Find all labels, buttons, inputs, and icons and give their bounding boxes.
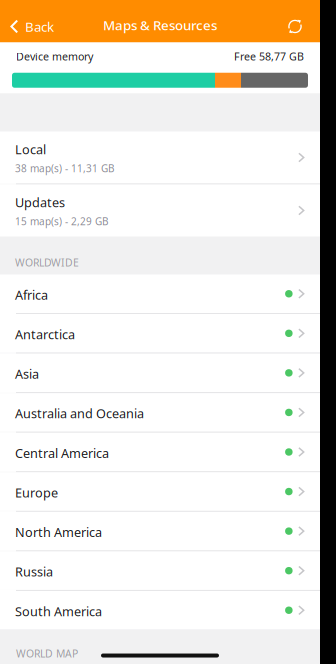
staticText: 15 map(s) - 2,29 GB — [15, 214, 109, 228]
staticText: North America — [15, 523, 102, 541]
staticText: Europe — [15, 484, 58, 501]
button[interactable]: Russia — [0, 551, 320, 590]
button[interactable]: North America — [0, 512, 320, 550]
staticText: 38 map(s) - 11,31 GB — [15, 161, 115, 175]
button[interactable]: Africa — [0, 274, 320, 313]
button[interactable]: South America — [0, 591, 320, 630]
staticText: Russia — [15, 563, 53, 580]
staticText: Device memory — [16, 49, 93, 64]
staticText: Africa — [15, 286, 48, 303]
staticText: Free 58,77 GB — [234, 49, 304, 64]
button[interactable]: Back — [0, 0, 66, 42]
staticText: Back — [25, 17, 54, 36]
staticText: Australia and Oceania — [15, 405, 144, 422]
staticText: Maps & Resources — [103, 16, 217, 34]
staticText: Asia — [15, 365, 39, 383]
button[interactable]: Europe — [0, 472, 320, 511]
staticText: WORLDWIDE — [15, 255, 79, 269]
staticText: WORLD MAP — [16, 646, 78, 661]
button[interactable]: Refresh — [273, 0, 320, 42]
staticText: South America — [15, 603, 102, 620]
button[interactable]: Antarctica — [0, 314, 320, 353]
staticText: Antarctica — [15, 326, 75, 343]
staticText: Central America — [15, 444, 109, 462]
button[interactable]: Central America — [0, 433, 320, 471]
staticText: Updates — [15, 194, 65, 211]
button[interactable]: Local — [0, 131, 320, 183]
button[interactable]: Australia and Oceania — [0, 393, 320, 432]
staticText: Local — [15, 141, 46, 158]
button[interactable]: Asia — [0, 354, 320, 392]
button[interactable]: Updates — [0, 184, 320, 236]
